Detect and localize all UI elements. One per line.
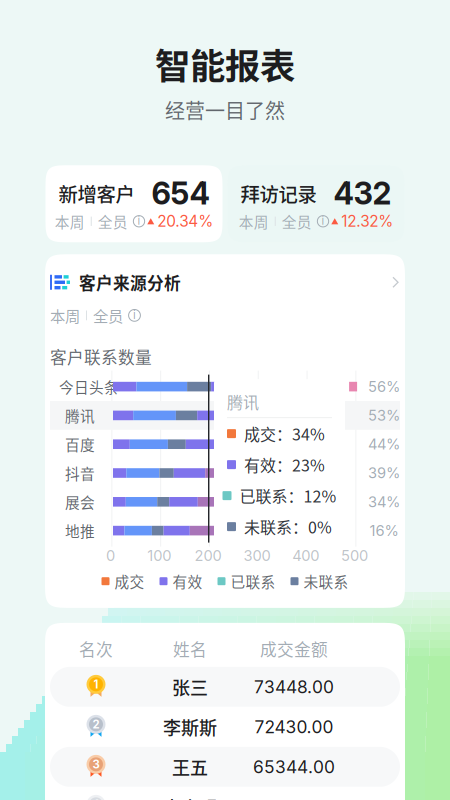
staticText: 400 [292,547,319,564]
staticText: 姓名 [173,637,207,661]
button[interactable]: 指标说明 [128,215,145,227]
staticText: 未联系 [303,571,348,592]
staticText: 20.34% [157,212,213,231]
staticText: 4 [92,797,100,800]
staticText: 名次 [79,637,113,661]
staticText: 73448.00 [254,676,334,697]
staticText: 432 [333,175,391,212]
button[interactable]: 新增客户 [45,165,222,242]
staticText: 百度 [65,434,95,455]
staticText: i [321,214,324,227]
staticText: 李小明 [163,794,217,800]
staticText: 地推 [65,520,95,541]
staticText: 3 [92,757,99,771]
staticText: 本周 [239,211,269,232]
staticText: 本周 [50,304,80,326]
staticText: 有效 [172,571,202,592]
staticText: 65344.00 [253,756,335,777]
staticText: 12.32% [341,212,393,231]
button[interactable]: 全员 [282,211,312,232]
staticText: 全员 [282,211,312,232]
button[interactable]: 本周 [50,304,80,326]
staticText: 未联系：0% [244,515,332,538]
staticText: 全员 [93,304,123,326]
button[interactable]: 拜访记录 [227,165,404,242]
staticText: 已联系：12% [239,484,336,507]
button[interactable]: 客户来源分析 [50,254,400,296]
staticText: 展会 [65,491,95,512]
staticText: 腾讯 [227,390,259,413]
staticText: 智能报表 [155,38,295,89]
button[interactable]: 全员 [93,304,123,326]
staticText: 张三 [172,674,208,700]
staticText: 44% [368,435,400,453]
staticText: 成交：34% [244,422,325,445]
staticText: 抖音 [65,462,95,484]
staticText: 2 [92,717,99,731]
staticText: 新增客户 [58,179,134,207]
staticText: 34% [368,493,400,511]
staticText: 654 [151,175,209,212]
staticText: 已联系 [230,571,275,592]
button[interactable]: 3 [50,747,400,787]
button[interactable]: 本周 [55,211,85,232]
button[interactable]: 1 [50,667,400,707]
staticText: i [137,214,140,227]
button[interactable]: 全员 [98,211,128,232]
staticText: 王五 [172,754,208,780]
button[interactable]: 本周 [239,211,269,232]
button[interactable]: 4 [50,787,400,800]
staticText: 16% [369,522,398,539]
staticText: 今日头条 [59,376,119,397]
staticText: 200 [195,547,222,564]
staticText: 300 [243,547,270,564]
staticText: 成交金额 [260,637,328,661]
staticText: 100 [147,547,171,564]
staticText: 腾讯 [65,405,95,426]
staticText: 1 [93,677,98,691]
staticText: 成交 [114,571,144,592]
staticText: 客户来源分析 [79,270,181,294]
staticText: 0 [106,547,115,564]
staticText: 客户联系数量 [50,344,152,369]
staticText: 有效：23% [244,453,325,476]
staticText: 全员 [98,211,128,232]
staticText: 500 [341,547,368,564]
staticText: 39% [368,464,400,482]
staticText: 56% [368,378,400,395]
button[interactable]: 2 [50,707,400,747]
staticText: 拜访记录 [240,179,316,207]
staticText: i [133,308,136,322]
staticText: 经营一目了然 [165,95,285,124]
staticText: 72430.00 [254,716,333,737]
staticText: 本周 [55,211,85,232]
button[interactable]: 指标说明 [123,309,141,322]
button[interactable]: 指标说明 [312,215,329,227]
staticText: 53% [368,406,400,424]
staticText: 李斯斯 [163,714,217,740]
